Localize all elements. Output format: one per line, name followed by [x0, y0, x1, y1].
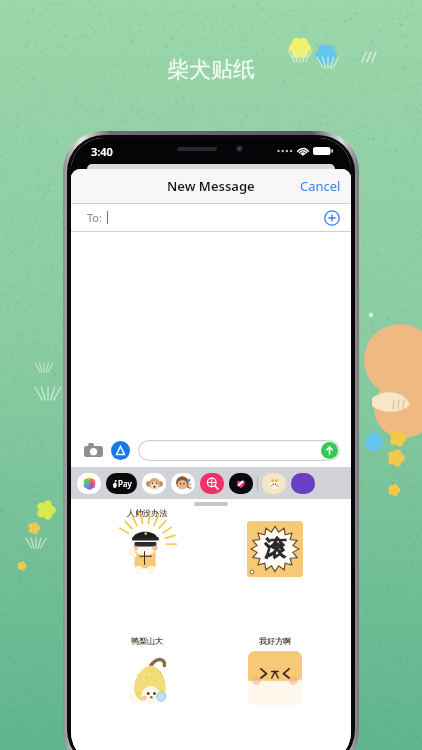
button[interactable]: Camera: [82, 439, 104, 461]
button[interactable]: Send: [321, 442, 338, 459]
button[interactable]: Cancel: [290, 171, 351, 201]
staticText: 滚: [264, 535, 286, 563]
button[interactable]: 人帅没办法: [83, 508, 211, 581]
staticText: 3:40: [91, 144, 113, 159]
button[interactable]: iMessage app: [142, 473, 166, 494]
button[interactable]: Apple Pay: [106, 473, 137, 494]
button[interactable]: Add contact: [324, 210, 340, 226]
staticText: Cancel: [300, 177, 341, 195]
button[interactable]: To:: [71, 204, 351, 231]
button[interactable]: 我好方啊: [211, 636, 339, 709]
staticText: 柴犬贴纸: [167, 56, 255, 84]
staticText: New Message: [167, 177, 255, 195]
button[interactable]: Send: [138, 440, 340, 461]
button[interactable]: 滚: [211, 508, 339, 580]
button[interactable]: Image search: [200, 473, 224, 494]
button[interactable]: iMessage app: [77, 473, 101, 494]
button[interactable]: iMessage app: [171, 473, 195, 494]
button[interactable]: 鸭梨山大: [83, 636, 211, 709]
staticText: Pay: [118, 478, 132, 489]
button[interactable]: App Store: [111, 441, 130, 460]
staticText: 我好方啊: [259, 636, 291, 646]
staticText: 人帅没办法: [127, 508, 167, 518]
staticText: 鸭梨山大: [131, 636, 163, 646]
button[interactable]: iMessage app: [262, 473, 286, 494]
button[interactable]: Sticker app: [291, 473, 315, 494]
staticText: To:: [87, 210, 102, 225]
button[interactable]: Digital Touch: [229, 473, 253, 494]
